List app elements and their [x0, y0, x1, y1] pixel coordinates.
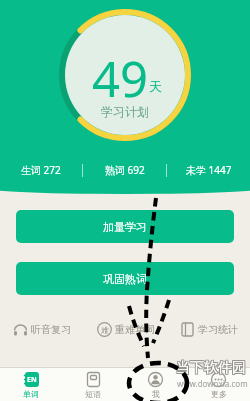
- staticText: 听音复习: [31, 323, 71, 336]
- button[interactable]: 听音复习: [0, 322, 84, 337]
- staticText: 未学 1447: [186, 163, 232, 177]
- button[interactable]: [59, 9, 191, 141]
- staticText: 当下软件园: [177, 359, 247, 377]
- staticText: 更多: [211, 389, 227, 399]
- button[interactable]: 更多: [187, 368, 250, 401]
- staticText: 当下软件园: [175, 358, 245, 376]
- staticText: 我: [152, 389, 160, 399]
- staticText: www.downxia.com: [177, 378, 248, 389]
- staticText: 当下软件园: [177, 358, 247, 376]
- staticText: 当下软件园: [175, 360, 245, 378]
- staticText: 短语: [85, 389, 101, 399]
- button[interactable]: 难: [84, 322, 167, 337]
- staticText: 重难单词: [115, 323, 155, 336]
- staticText: 当下软件园: [177, 360, 247, 378]
- staticText: 巩固熟词: [103, 272, 147, 286]
- staticText: 当下软件园: [176, 358, 246, 376]
- staticText: 加量学习: [103, 220, 147, 234]
- staticText: 生词 272: [21, 163, 61, 177]
- staticText: 难: [101, 325, 109, 335]
- button[interactable]: 短语: [62, 368, 124, 401]
- button[interactable]: EN: [0, 368, 62, 401]
- staticText: 49: [92, 45, 149, 112]
- staticText: 学习统计: [198, 323, 238, 336]
- staticText: 当下软件园: [176, 360, 246, 378]
- staticText: EN: [27, 375, 37, 385]
- staticText: 学习计划: [101, 104, 149, 119]
- staticText: 当下软件园: [176, 359, 246, 377]
- staticText: 熟词 692: [105, 163, 145, 177]
- button[interactable]: 我: [124, 368, 187, 401]
- button[interactable]: 学习统计: [167, 322, 250, 337]
- button[interactable]: 巩固熟词: [16, 262, 234, 295]
- button[interactable]: 加量学习: [16, 210, 234, 243]
- staticText: 单词: [23, 389, 39, 399]
- staticText: 天: [149, 78, 162, 94]
- staticText: 当下软件园: [175, 359, 245, 377]
